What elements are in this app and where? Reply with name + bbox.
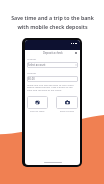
- staticText: $0.00: [28, 77, 35, 81]
- staticText: with mobile check deposits: [17, 23, 88, 30]
- button[interactable]: Close: [74, 51, 78, 55]
- button[interactable]: $0.00: [27, 76, 78, 82]
- staticText: Amount: [27, 71, 37, 74]
- staticText: Front of check: [30, 110, 45, 113]
- staticText: Select account: [28, 63, 46, 67]
- staticText: Make sure you sign the back of your chec…: [27, 83, 78, 92]
- staticText: Account: [27, 57, 37, 60]
- button[interactable]: Select account: [27, 62, 78, 68]
- staticText: Deposit a check: [43, 51, 63, 55]
- button[interactable]: Back of check: [56, 96, 78, 109]
- staticText: Back of check: [60, 110, 74, 113]
- staticText: Save time and a trip to the bank: [11, 14, 94, 21]
- button[interactable]: Front of check: [27, 96, 48, 109]
